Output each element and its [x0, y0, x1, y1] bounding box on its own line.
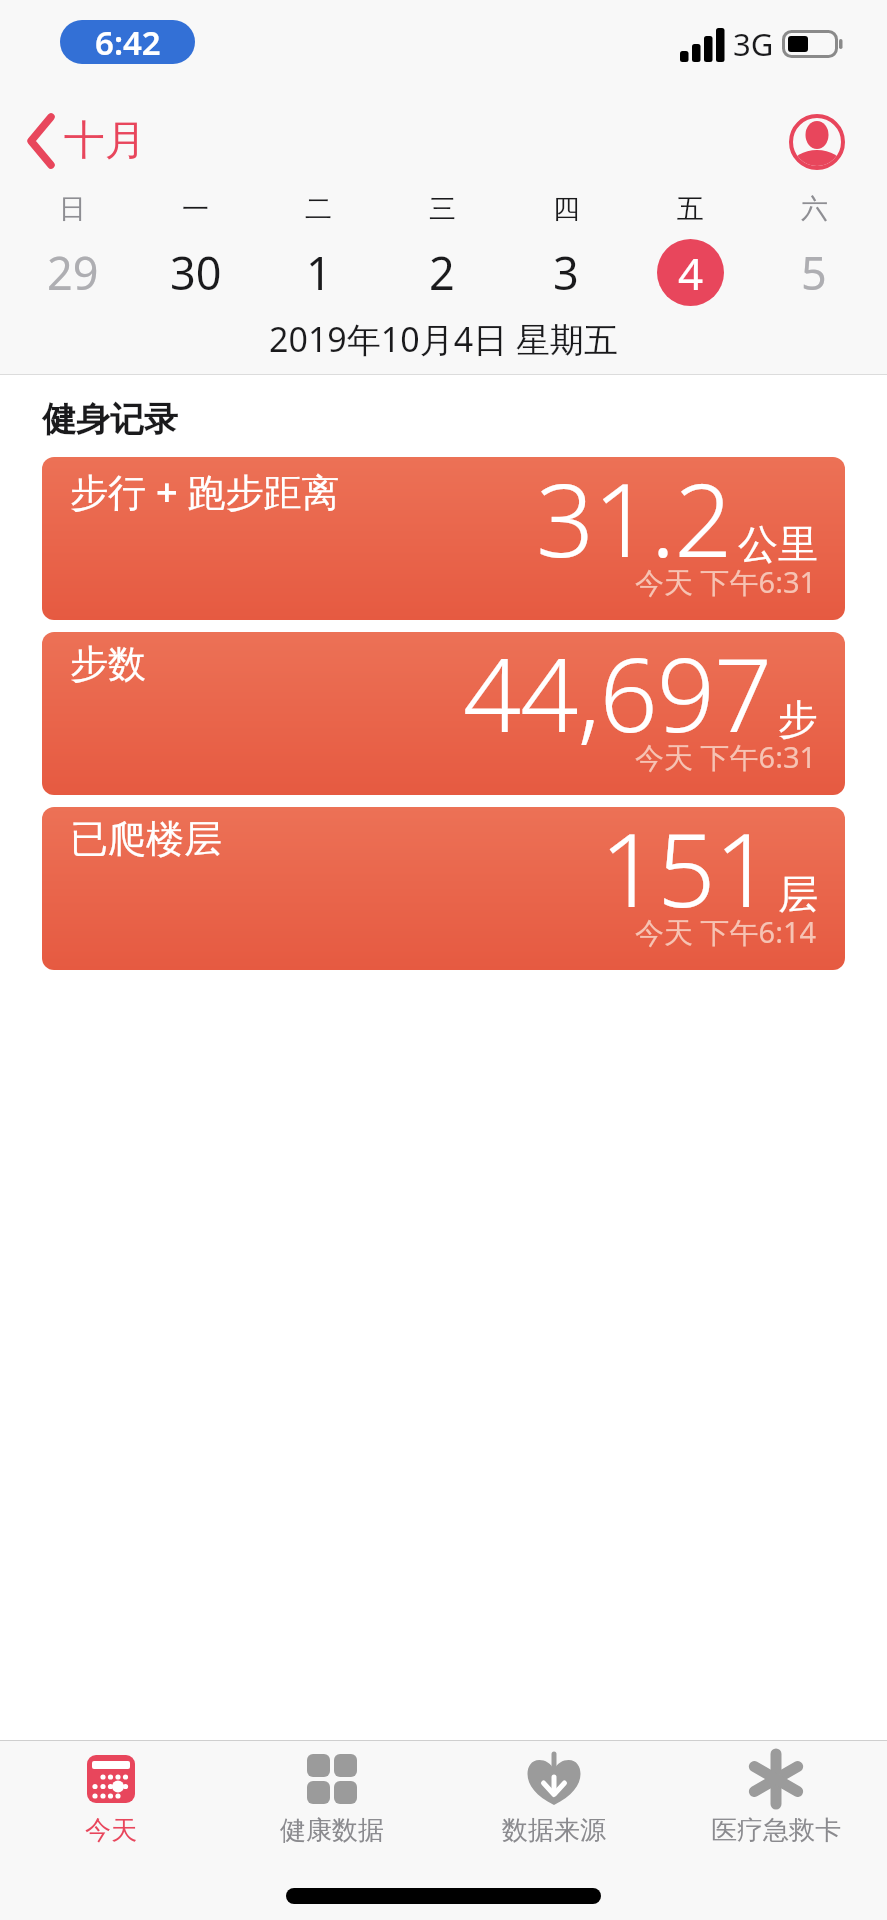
staticText: 4: [678, 243, 704, 303]
staticText: 31.2: [536, 457, 732, 587]
button[interactable]: 1: [306, 242, 332, 303]
button[interactable]: 30: [170, 242, 222, 303]
staticText: 数据来源: [502, 1814, 606, 1847]
staticText: 3G: [733, 23, 774, 65]
staticText: 今天: [85, 1814, 137, 1847]
button[interactable]: 步行 + 跑步距离: [42, 457, 845, 620]
staticText: 四: [553, 192, 580, 226]
staticText: 五: [677, 192, 704, 226]
button[interactable]: 健康数据: [221, 1752, 443, 1847]
button[interactable]: 十月: [24, 112, 146, 170]
button[interactable]: 今天: [0, 1752, 221, 1847]
staticText: 6:42: [95, 20, 161, 64]
button[interactable]: 医疗急救卡: [665, 1752, 887, 1847]
button[interactable]: 步数: [42, 632, 845, 795]
button[interactable]: 5: [801, 242, 827, 303]
staticText: 十月: [64, 115, 146, 167]
button[interactable]: 29: [47, 242, 99, 303]
staticText: 一: [182, 192, 209, 226]
staticText: 医疗急救卡: [711, 1814, 841, 1847]
button[interactable]: 2: [429, 242, 455, 303]
staticText: 今天 下午6:31: [635, 562, 817, 602]
staticText: 步数: [70, 640, 146, 688]
staticText: 步: [778, 694, 818, 744]
staticText: 公里: [738, 519, 818, 569]
button[interactable]: 已爬楼层: [42, 807, 845, 970]
staticText: 六: [801, 192, 828, 226]
staticText: 二: [305, 192, 332, 226]
button[interactable]: 6:42: [60, 20, 195, 64]
button[interactable]: 数据来源: [443, 1752, 665, 1847]
staticText: 健康数据: [280, 1814, 384, 1847]
staticText: 151: [600, 807, 772, 937]
staticText: 已爬楼层: [70, 815, 222, 863]
staticText: 今天 下午6:31: [635, 737, 817, 777]
staticText: 层: [778, 869, 818, 919]
button[interactable]: 4: [657, 239, 724, 306]
button[interactable]: [789, 114, 845, 170]
button[interactable]: 3: [553, 242, 579, 303]
staticText: 健身记录: [42, 398, 178, 441]
staticText: 2019年10月4日 星期五: [0, 316, 887, 362]
staticText: 44,697: [463, 632, 772, 762]
staticText: 三: [429, 192, 456, 226]
staticText: 步行 + 跑步距离: [70, 465, 340, 517]
staticText: 今天 下午6:14: [635, 912, 817, 952]
staticText: 日: [59, 192, 86, 226]
